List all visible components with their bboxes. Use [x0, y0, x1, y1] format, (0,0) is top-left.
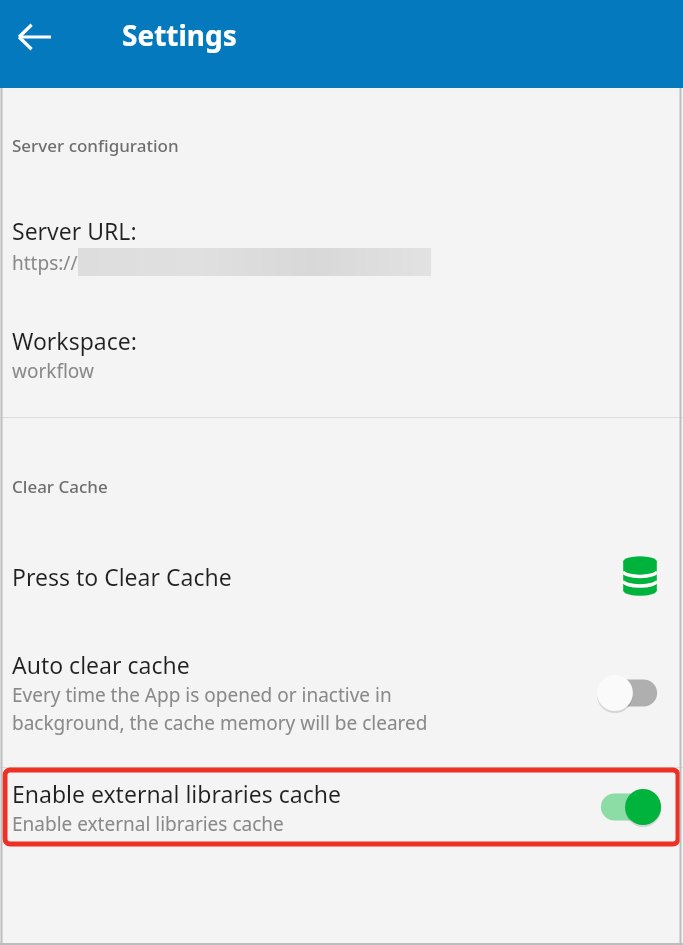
other: Clear cache — [619, 555, 661, 597]
button[interactable]: On — [591, 782, 667, 832]
staticText: Every time the App is opened or inactive… — [12, 682, 428, 736]
staticText: Press to Clear Cache — [12, 561, 619, 592]
staticText: Workspace: — [12, 325, 137, 356]
button[interactable]: Auto clear cache — [0, 649, 683, 736]
staticText: Enable external libraries cache — [12, 778, 341, 809]
button[interactable]: Workspace: — [0, 325, 683, 384]
button[interactable]: Off — [591, 668, 667, 718]
staticText: Enable external libraries cache — [12, 811, 284, 837]
button[interactable]: Back — [8, 10, 62, 64]
staticText: Settings — [122, 16, 237, 54]
button[interactable]: Server URL: — [0, 215, 683, 277]
staticText: Server URL: — [12, 215, 137, 246]
staticText: Clear Cache — [12, 475, 108, 498]
staticText: https:// — [12, 250, 78, 276]
button[interactable]: Enable external libraries cache — [3, 768, 680, 846]
staticText: Server configuration — [12, 134, 179, 157]
staticText: workflow — [12, 358, 94, 384]
button[interactable]: Press to Clear Cache — [0, 555, 683, 597]
staticText: Auto clear cache — [12, 649, 190, 680]
